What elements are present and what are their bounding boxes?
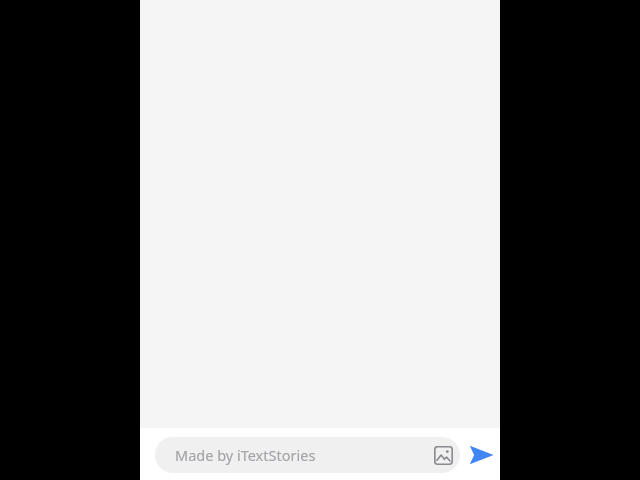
button[interactable]: Made by iTextStories — [155, 437, 460, 473]
button[interactable]: Send — [464, 438, 498, 472]
staticText: Made by iTextStories — [175, 445, 316, 465]
button[interactable]: Attach photo — [428, 440, 458, 470]
